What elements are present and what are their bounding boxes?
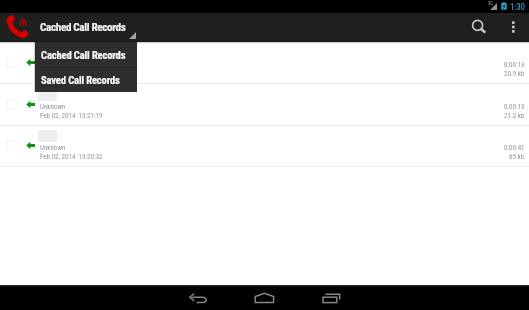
staticText: 20.9 kb bbox=[504, 70, 525, 78]
button[interactable]: Search bbox=[466, 13, 490, 42]
staticText: 3G bbox=[488, 1, 493, 6]
button[interactable]: Select call record bbox=[7, 58, 16, 67]
button[interactable]: Select call record bbox=[0, 84, 529, 126]
button[interactable]: Select call record bbox=[7, 141, 16, 150]
button[interactable]: Cached Call Records bbox=[35, 42, 137, 67]
staticText: Feb 02, 2014 13:20:32 bbox=[40, 153, 103, 161]
button[interactable]: Select call record bbox=[0, 125, 529, 167]
staticText: Cached Call Records bbox=[41, 49, 126, 61]
button[interactable]: Cached Call Records bbox=[33, 13, 138, 42]
button[interactable]: More options bbox=[502, 13, 524, 42]
staticText: Cached Call Records bbox=[40, 21, 126, 34]
button[interactable]: Back bbox=[186, 285, 212, 310]
staticText: Feb 02, 2014 13:21:19 bbox=[40, 112, 103, 120]
button[interactable]: Select call record bbox=[0, 42, 529, 84]
button[interactable]: Saved Call Records bbox=[35, 68, 137, 92]
button[interactable]: Select call record bbox=[7, 100, 16, 109]
button[interactable]: Recent apps bbox=[318, 285, 344, 310]
button[interactable]: Home bbox=[252, 285, 278, 310]
staticText: 65 kb bbox=[509, 153, 525, 161]
staticText: Unknown bbox=[40, 144, 66, 152]
staticText: 1:30 bbox=[510, 2, 525, 13]
staticText: 21.2 kb bbox=[504, 112, 525, 120]
staticText: Unknown bbox=[40, 103, 66, 111]
staticText: 0:00:13 bbox=[504, 61, 525, 69]
staticText: 0:00:13 bbox=[504, 103, 525, 111]
staticText: 0:00:41 bbox=[504, 144, 525, 152]
staticText: Feb 02, 2014 13:21:36 bbox=[40, 70, 103, 78]
staticText: Saved Call Records bbox=[41, 74, 120, 86]
